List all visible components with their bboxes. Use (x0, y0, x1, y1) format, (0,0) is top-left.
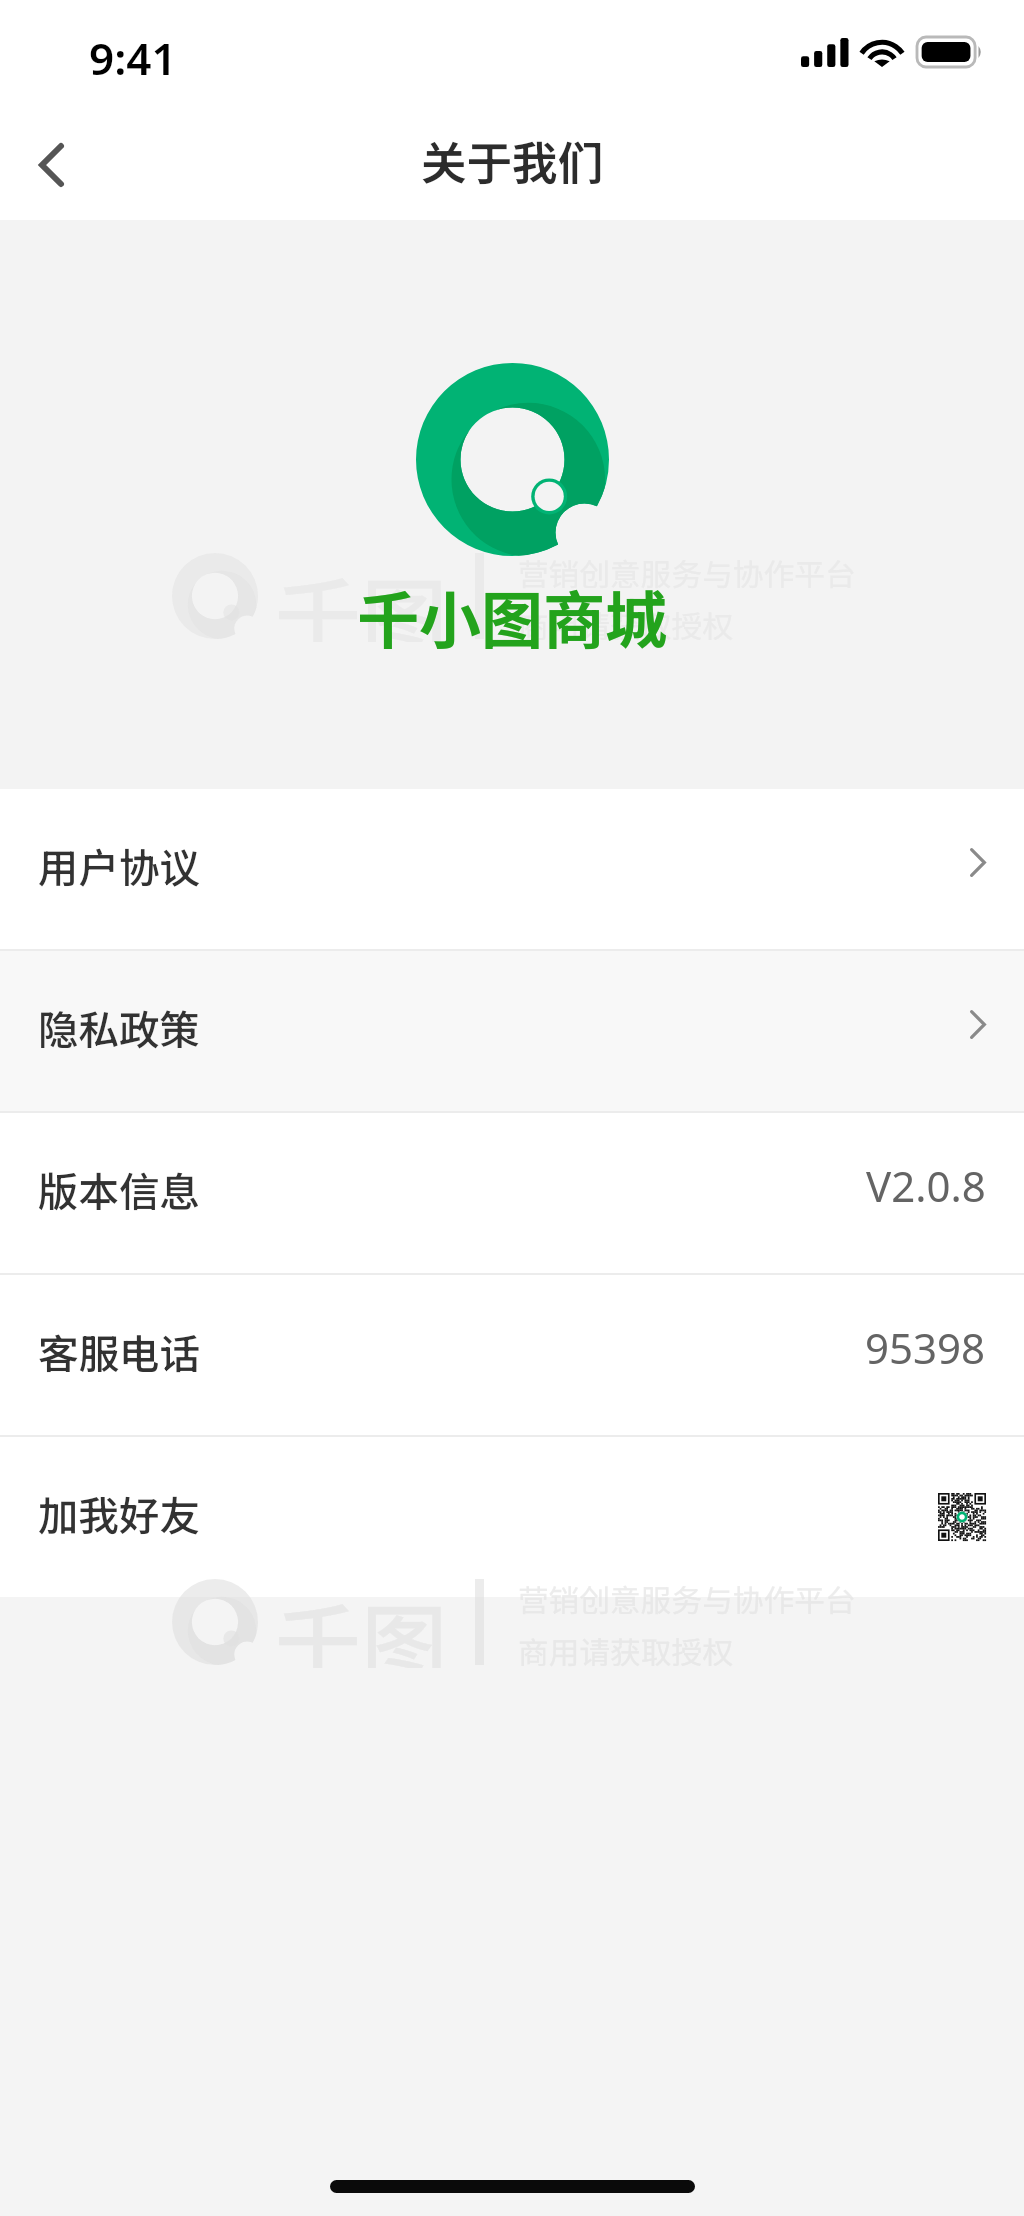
staticText: 营销创意服务与协作平台 (518, 1576, 856, 1620)
staticText: 商用请获取授权 (518, 1628, 733, 1668)
staticText: 千图 (275, 1576, 447, 1668)
staticText: 营销创意服务与协作平台 (518, 550, 856, 594)
button[interactable]: 隐私政策 (0, 951, 1024, 1111)
button[interactable]: 用户协议 (0, 789, 1024, 949)
staticText: 用户协议 (38, 836, 200, 895)
staticText: 隐私政策 (38, 998, 200, 1057)
staticText: 千图 (275, 550, 447, 642)
button[interactable]: 客服电话 (0, 1275, 1024, 1435)
staticText: 95398 (865, 1319, 986, 1376)
button[interactable]: 加我好友 (0, 1437, 1024, 1597)
button[interactable]: Back (4, 110, 98, 220)
staticText: 版本信息 (38, 1160, 200, 1219)
staticText: 客服电话 (38, 1322, 200, 1381)
button[interactable]: 版本信息 (0, 1113, 1024, 1273)
staticText: 商用请获取授权 (518, 602, 733, 642)
staticText: 关于我们 (421, 127, 604, 193)
staticText: 加我好友 (38, 1484, 200, 1543)
staticText: 9:41 (89, 28, 177, 88)
staticText: 千小图商城 (357, 571, 668, 661)
staticText: V2.0.8 (866, 1157, 986, 1214)
